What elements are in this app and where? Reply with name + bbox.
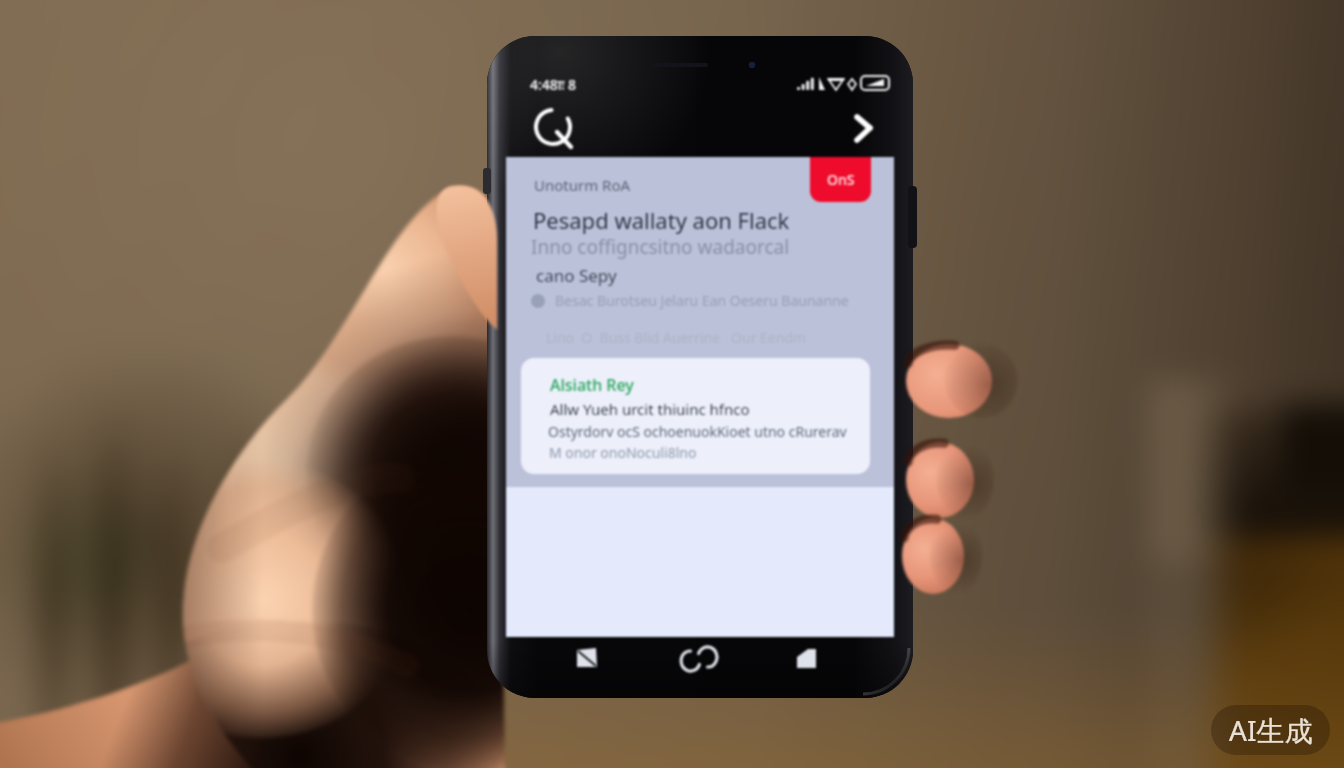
staticText: AI生成 xyxy=(1229,711,1313,749)
button[interactable] xyxy=(521,358,870,474)
staticText: Ostyrdorv ocS ochoenuokKioet utno cRurer… xyxy=(548,422,847,441)
staticText: Inno coffigncsitno wadaorcal xyxy=(531,234,790,260)
staticText: Besac Burotseu Jelaru Ean Oeseru Baunann… xyxy=(555,291,849,310)
staticText: M onor onoNoculi8lno xyxy=(549,443,697,462)
staticText: 4:48ाः 8 xyxy=(530,75,577,94)
button[interactable]: Recents xyxy=(782,640,838,688)
button[interactable]: Promo badge xyxy=(810,157,871,202)
button[interactable]: Search xyxy=(528,100,586,158)
staticText: Allw Yueh urcit thiuinc hfnco xyxy=(550,399,750,419)
button[interactable]: Back xyxy=(560,640,616,688)
staticText: cano Sepy xyxy=(536,264,617,287)
staticText: Unoturm RoA xyxy=(534,175,631,195)
staticText: Pesapd wallaty aon Flack xyxy=(533,205,790,235)
staticText: OnS xyxy=(827,170,855,189)
staticText: Lino O Buss Blid Auerrine Our Eendm xyxy=(546,328,807,347)
staticText: Alsiath Rey xyxy=(550,374,634,396)
button[interactable]: Forward xyxy=(840,100,892,152)
button[interactable]: Home xyxy=(672,640,728,688)
